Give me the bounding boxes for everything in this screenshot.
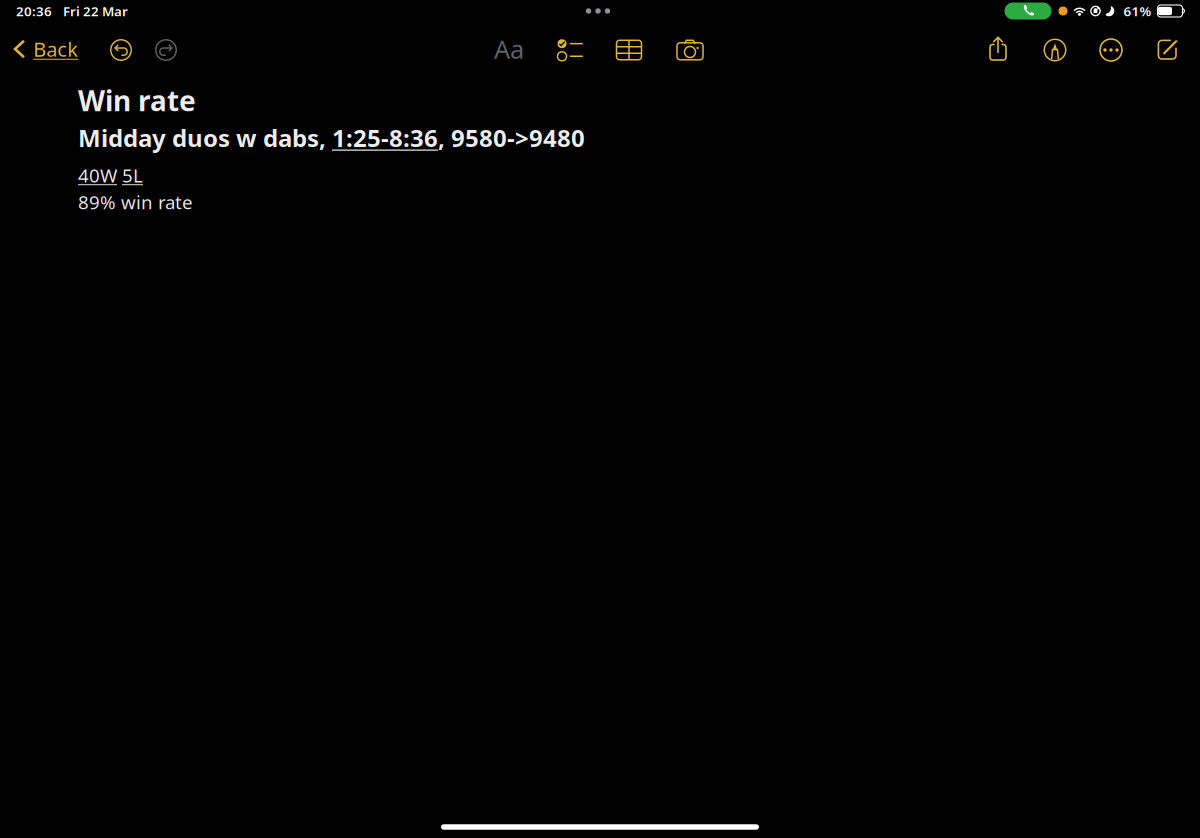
staticText: 89% win rate	[78, 189, 193, 214]
staticText: Win rate	[78, 82, 196, 119]
button[interactable]: More	[1089, 28, 1133, 72]
button[interactable]: Redo	[145, 28, 187, 72]
button[interactable]: Table	[607, 28, 651, 72]
staticText: Back	[33, 36, 78, 62]
button[interactable]: Back	[5, 27, 87, 71]
button[interactable]: Undo	[100, 28, 142, 72]
staticText: Midday duos w dabs, 1:25-8:36, 9580->948…	[78, 122, 585, 154]
button[interactable]: Checklist	[548, 28, 592, 72]
staticText: 40W 5L	[78, 163, 143, 187]
staticText: 61%	[1123, 2, 1151, 20]
staticText: Fri 22 Mar	[63, 2, 128, 20]
button[interactable]: New note	[1146, 28, 1190, 72]
button[interactable]: Markup	[1033, 28, 1077, 72]
button[interactable]: Insert photo	[668, 28, 712, 72]
staticText: 20:36	[16, 2, 52, 20]
button[interactable]: Share	[976, 27, 1020, 71]
staticText: Aa	[494, 32, 524, 66]
button[interactable]: Format	[487, 27, 531, 71]
